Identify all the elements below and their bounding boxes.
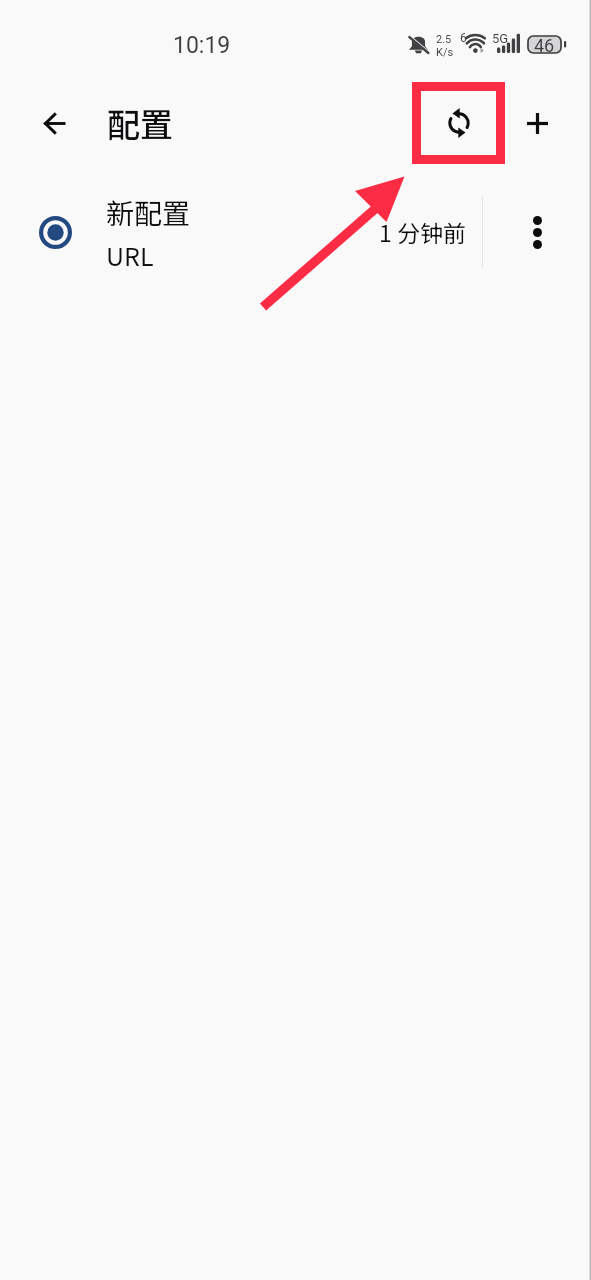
staticText: 10:19 (173, 32, 231, 59)
staticText: K/s (436, 46, 454, 59)
staticText: 6 (460, 31, 467, 45)
staticText: 5G (492, 31, 509, 46)
staticText: 新配置 (106, 192, 191, 233)
button[interactable]: Back (31, 99, 79, 147)
staticText: URL (106, 237, 154, 273)
button[interactable]: Sync (435, 99, 483, 147)
button[interactable]: More options (513, 208, 561, 256)
staticText: 2.5 (436, 33, 452, 46)
staticText: 配置 (107, 99, 173, 147)
staticText: 46 (534, 35, 555, 54)
button[interactable]: 新配置 (0, 188, 591, 280)
staticText: 1 分钟前 (379, 215, 466, 248)
button[interactable]: Add (513, 99, 561, 147)
